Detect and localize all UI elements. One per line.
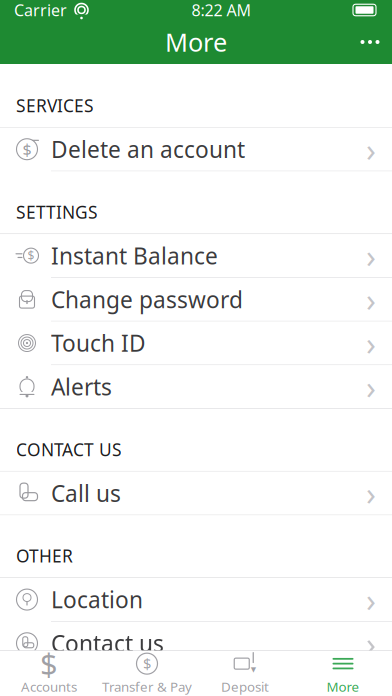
staticText: › [366, 322, 376, 364]
staticText: Transfer & Pay [102, 678, 192, 695]
button[interactable]: $ [0, 651, 98, 696]
staticText: Change password [51, 284, 243, 314]
staticText: SETTINGS [16, 200, 98, 223]
button[interactable]: Touch ID [0, 321, 392, 364]
button[interactable]: Change password [0, 278, 392, 321]
staticText: › [366, 472, 376, 514]
staticText: $ [27, 248, 34, 264]
button[interactable]: Contact us [0, 622, 392, 665]
staticText: CONTACT US [16, 438, 122, 461]
staticText: Delete an account [51, 134, 245, 164]
staticText: Deposit [221, 678, 269, 695]
button[interactable]: $ [98, 651, 196, 696]
staticText: › [366, 278, 376, 321]
button[interactable]: Call us [0, 472, 392, 515]
staticText: $ [22, 139, 31, 160]
staticText: 8:22 AM [191, 0, 251, 21]
staticText: More [165, 25, 227, 59]
button[interactable]: ▾ [196, 651, 294, 696]
button[interactable]: More options [348, 20, 392, 64]
staticText: ▾ [251, 663, 256, 675]
button[interactable]: $ [0, 128, 392, 171]
staticText: Accounts [21, 678, 77, 695]
staticText: Touch ID [51, 328, 146, 358]
staticText: OTHER [16, 544, 73, 567]
staticText: SERVICES [16, 94, 94, 117]
button[interactable]: Location [0, 578, 392, 621]
staticText: Call us [51, 478, 121, 508]
staticText: Contact us [51, 628, 164, 658]
staticText: More [326, 678, 359, 695]
staticText: › [366, 128, 376, 170]
staticText: Carrier [14, 0, 67, 21]
button[interactable]: Alerts [0, 365, 392, 408]
staticText: $ [143, 654, 151, 673]
staticText: › [366, 622, 376, 664]
staticText: Alerts [51, 372, 112, 402]
staticText: › [366, 365, 376, 408]
staticText: Instant Balance [51, 241, 218, 271]
staticText: › [366, 578, 376, 621]
button[interactable]: $ [0, 234, 392, 277]
staticText: Location [51, 584, 143, 615]
staticText: $ [40, 643, 58, 684]
staticText: › [366, 234, 376, 277]
button[interactable]: More [294, 651, 392, 696]
